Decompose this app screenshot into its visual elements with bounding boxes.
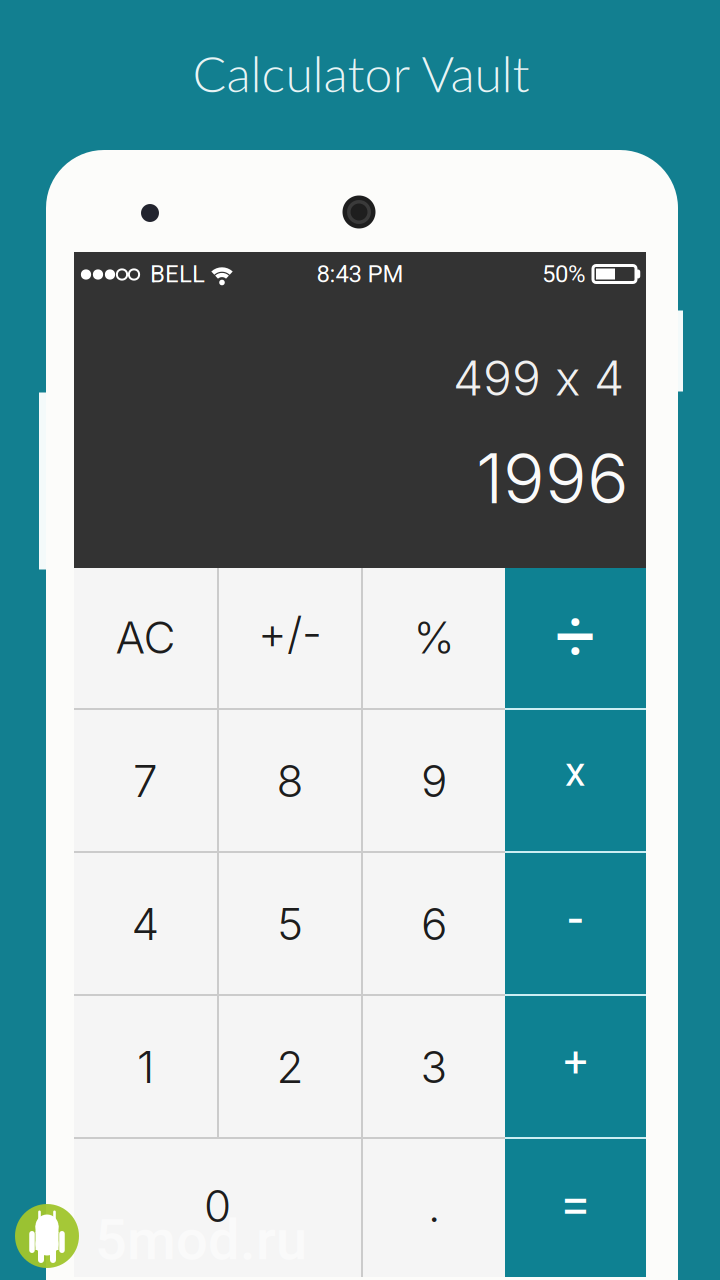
button[interactable]: - xyxy=(505,853,646,994)
staticText: % xyxy=(413,611,454,664)
staticText: 1996 xyxy=(476,436,629,520)
staticText: x xyxy=(541,349,594,407)
staticText: 5 xyxy=(277,897,303,951)
button[interactable]: AC xyxy=(74,568,217,708)
staticText: - xyxy=(568,887,583,950)
staticText: = xyxy=(561,1175,590,1236)
button[interactable]: 0 xyxy=(74,1139,361,1277)
button[interactable]: 7 xyxy=(74,710,217,851)
button[interactable]: 4 xyxy=(74,853,217,994)
staticText: 0 xyxy=(204,1179,231,1233)
staticText: BELL xyxy=(150,260,205,288)
staticText: 7 xyxy=(133,754,158,808)
button[interactable]: 3 xyxy=(363,996,505,1137)
staticText: 8:43 PM xyxy=(316,260,403,288)
button[interactable]: + xyxy=(505,996,646,1137)
staticText: +/- xyxy=(258,606,322,660)
staticText: 3 xyxy=(420,1040,447,1094)
button[interactable]: 2 xyxy=(219,996,361,1137)
staticText: 8 xyxy=(276,754,303,808)
button[interactable]: ÷ xyxy=(505,568,646,708)
button[interactable]: 1 xyxy=(74,996,217,1137)
staticText: . xyxy=(428,1179,440,1233)
button[interactable]: 5 xyxy=(219,853,361,994)
button[interactable]: +/- xyxy=(219,568,361,708)
staticText: 2 xyxy=(276,1040,303,1094)
button[interactable]: . xyxy=(363,1139,505,1277)
button[interactable]: 6 xyxy=(363,853,505,994)
staticText: 9 xyxy=(421,754,447,808)
button[interactable]: 8 xyxy=(219,710,361,851)
button[interactable]: x xyxy=(505,710,646,851)
staticText: x xyxy=(565,747,586,796)
staticText: 499 xyxy=(453,349,541,407)
staticText: 6 xyxy=(421,897,447,951)
staticText: ÷ xyxy=(555,594,596,679)
staticText: AC xyxy=(115,611,175,664)
staticText: 4 xyxy=(131,897,159,951)
staticText: + xyxy=(563,1037,587,1087)
staticText: 5mod.ru xyxy=(95,1207,307,1273)
button[interactable]: 9 xyxy=(363,710,505,851)
button[interactable]: = xyxy=(505,1139,646,1277)
staticText: Calculator Vault xyxy=(192,43,529,103)
staticText: 1 xyxy=(137,1040,154,1094)
staticText: 50% xyxy=(542,260,586,288)
staticText: 4 xyxy=(594,349,624,407)
button[interactable]: % xyxy=(363,568,505,708)
